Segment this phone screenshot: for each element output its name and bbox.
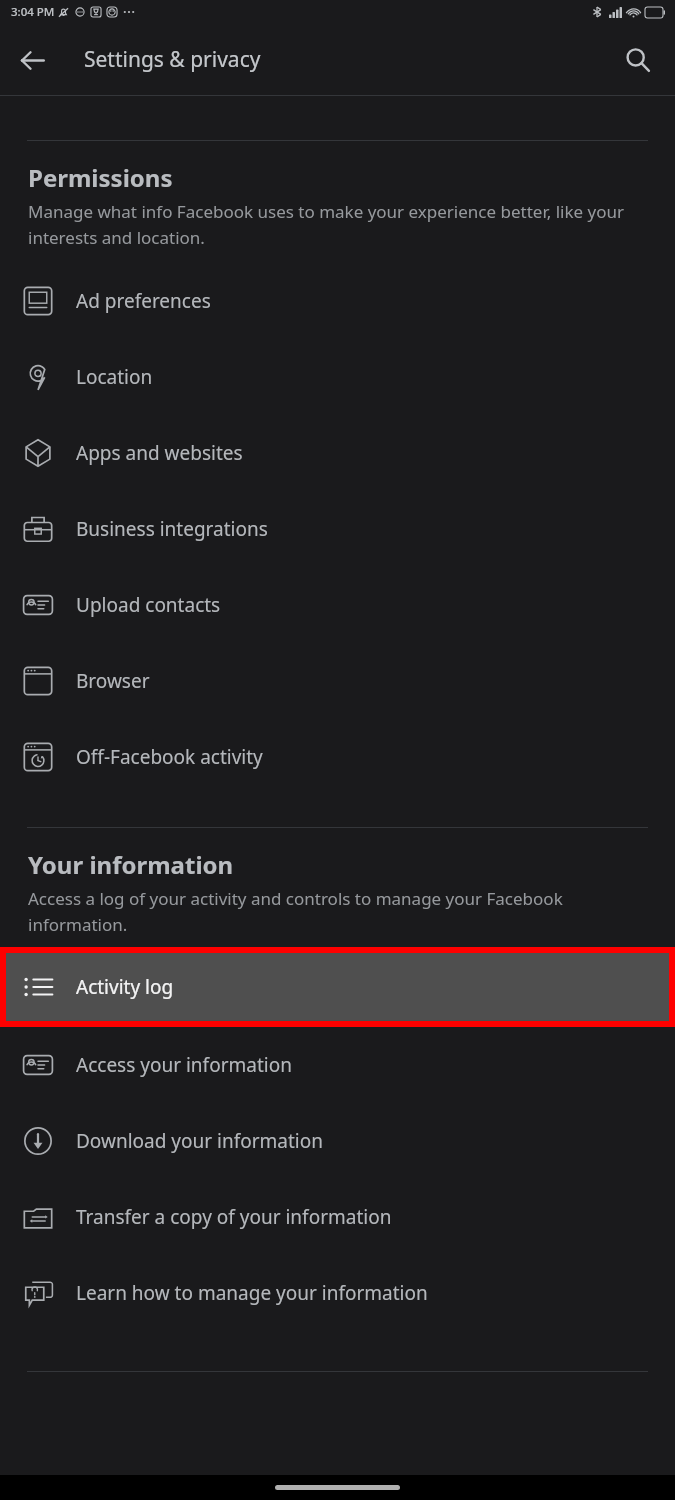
button[interactable]: Learn how to manage your information <box>0 1255 675 1331</box>
staticText: Ad preferences <box>76 288 211 314</box>
staticText: Transfer a copy of your information <box>76 1204 392 1230</box>
button[interactable]: Activity log <box>6 953 669 1021</box>
button[interactable]: Off-Facebook activity <box>0 719 675 795</box>
button[interactable]: Ad preferences <box>0 263 675 339</box>
staticText: Off-Facebook activity <box>76 744 263 770</box>
staticText: Learn how to manage your information <box>76 1280 428 1306</box>
button[interactable]: Upload contacts <box>0 567 675 643</box>
button[interactable]: Back <box>6 34 58 86</box>
button[interactable]: Download your information <box>0 1103 675 1179</box>
staticText: Upload contacts <box>76 592 221 618</box>
button[interactable]: Location <box>0 339 675 415</box>
button[interactable]: Browser <box>0 643 675 719</box>
staticText: Your information <box>28 848 675 881</box>
button[interactable]: Search <box>612 34 664 86</box>
staticText: Apps and websites <box>76 440 243 466</box>
staticText: Permissions <box>28 161 675 194</box>
staticText: Access your information <box>76 1052 292 1078</box>
staticText: Manage what info Facebook uses to make y… <box>28 200 633 249</box>
staticText: Browser <box>76 668 150 694</box>
staticText: Download your information <box>76 1128 324 1154</box>
staticText: 3:04 PM <box>11 4 55 20</box>
staticText: Settings & privacy <box>84 45 261 74</box>
button[interactable]: Apps and websites <box>0 415 675 491</box>
staticText: Access a log of your activity and contro… <box>28 887 633 936</box>
button[interactable]: Transfer a copy of your information <box>0 1179 675 1255</box>
staticText: Activity log <box>76 974 174 1000</box>
button[interactable]: Business integrations <box>0 491 675 567</box>
staticText: Business integrations <box>76 516 268 542</box>
staticText: Location <box>76 364 153 390</box>
button[interactable]: Access your information <box>0 1027 675 1103</box>
